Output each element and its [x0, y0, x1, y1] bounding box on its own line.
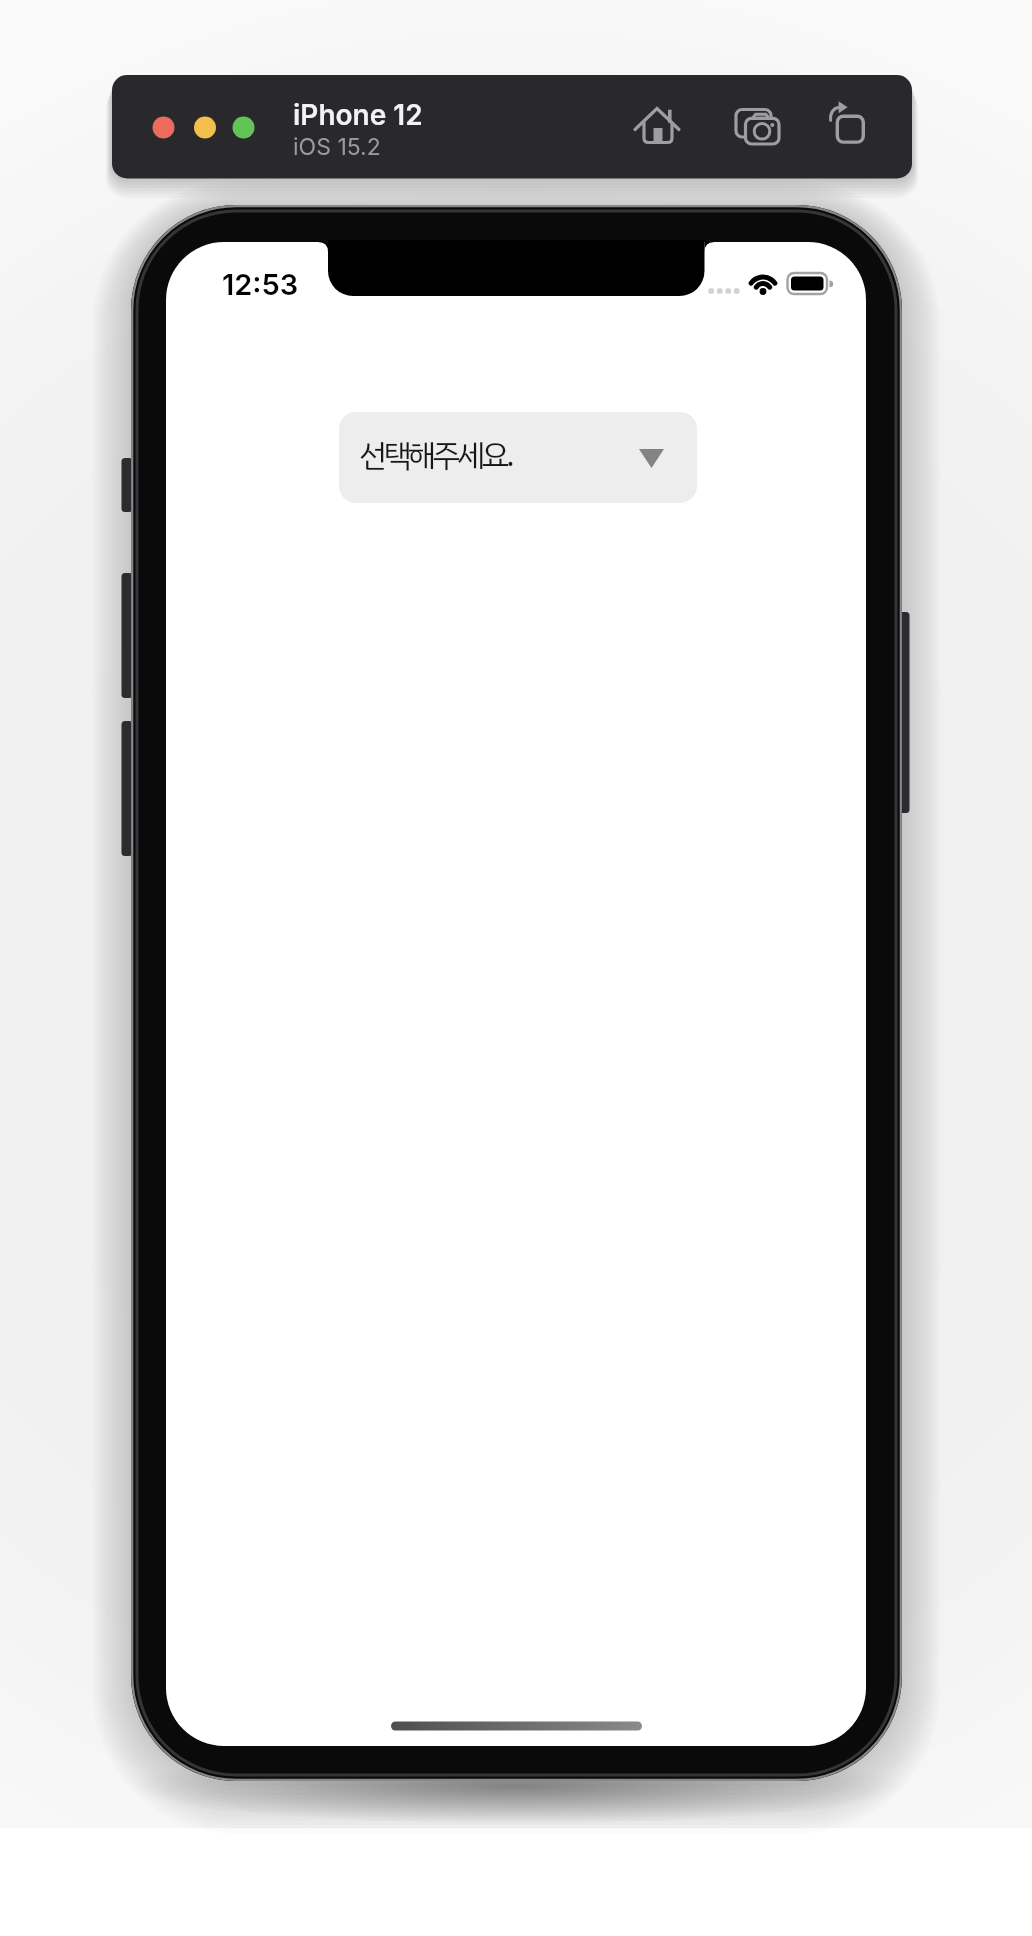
staticText: 12:53 [222, 267, 299, 302]
button[interactable] [823, 102, 873, 152]
staticText: iOS 15.2 [293, 133, 381, 159]
button[interactable] [632, 102, 682, 152]
staticText: 선택해주세요. [359, 432, 512, 479]
staticText: iPhone 12 [293, 98, 423, 132]
button[interactable]: 선택해주세요. [339, 412, 697, 503]
button[interactable] [733, 102, 783, 152]
